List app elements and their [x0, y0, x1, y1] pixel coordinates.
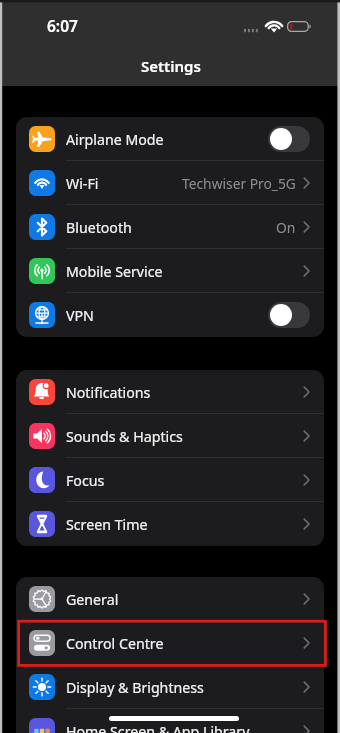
staticText: Control Centre — [66, 634, 164, 653]
staticText: Techwiser Pro_5G — [182, 174, 296, 193]
button[interactable]: Toggle Airplane Mode — [268, 126, 310, 152]
staticText: Mobile Service — [66, 262, 163, 281]
staticText: Screen Time — [66, 515, 148, 534]
button[interactable]: Sounds & Haptics — [16, 414, 324, 458]
staticText: Bluetooth — [66, 218, 132, 237]
staticText: Airplane Mode — [66, 130, 164, 149]
staticText: Notifications — [66, 383, 151, 402]
button[interactable]: VPN — [16, 293, 324, 337]
button[interactable]: Mobile Service — [16, 249, 324, 293]
staticText: VPN — [66, 306, 94, 325]
staticText: Settings — [141, 56, 201, 76]
button[interactable]: Toggle VPN — [268, 302, 310, 328]
staticText: Display & Brightness — [66, 678, 204, 697]
button[interactable]: Airplane Mode — [16, 117, 324, 161]
button[interactable]: Notifications — [16, 370, 324, 414]
staticText: General — [66, 590, 119, 609]
staticText: On — [276, 218, 296, 237]
button[interactable]: Screen Time — [16, 502, 324, 546]
button[interactable]: Control Centre — [16, 621, 324, 665]
button[interactable]: Bluetooth — [16, 205, 324, 249]
staticText: 6:07 — [47, 15, 78, 36]
button[interactable]: Focus — [16, 458, 324, 502]
button[interactable]: Display & Brightness — [16, 665, 324, 709]
button[interactable]: Wi-Fi — [16, 161, 324, 205]
staticText: Focus — [66, 471, 105, 490]
staticText: Home Screen & App Library — [66, 722, 250, 733]
staticText: Wi-Fi — [66, 174, 99, 193]
button[interactable]: Home Screen & App Library — [16, 709, 324, 733]
staticText: Sounds & Haptics — [66, 427, 183, 446]
button[interactable]: General — [16, 577, 324, 621]
